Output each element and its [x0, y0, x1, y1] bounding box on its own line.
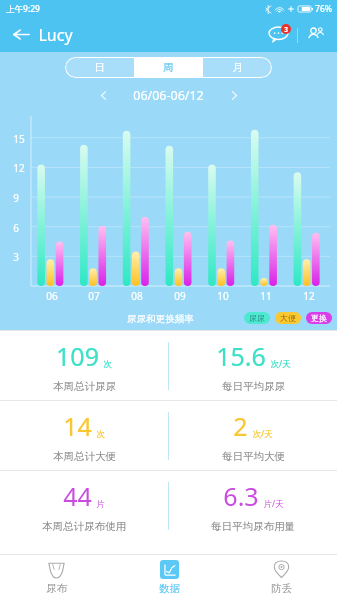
- staticText: 07: [88, 289, 100, 303]
- button[interactable]: 2: [169, 401, 337, 470]
- button[interactable]: 14: [0, 401, 168, 470]
- staticText: 12: [13, 161, 25, 175]
- button[interactable]: Family members: [305, 24, 327, 46]
- button[interactable]: 防丢: [225, 555, 337, 600]
- button[interactable]: Next week: [222, 83, 246, 107]
- button[interactable]: Previous week: [91, 83, 115, 107]
- staticText: 3: [13, 250, 19, 264]
- staticText: 次: [96, 429, 105, 440]
- staticText: 每日平均大便: [222, 450, 285, 463]
- staticText: 06: [46, 289, 58, 303]
- button[interactable]: Back: [9, 22, 34, 47]
- staticText: 6.3: [223, 479, 259, 513]
- staticText: 本周总计大便: [53, 450, 116, 463]
- staticText: 本周总计尿布使用: [42, 520, 126, 533]
- staticText: 次/天: [252, 428, 273, 440]
- staticText: 数据: [159, 582, 180, 595]
- staticText: 每日平均尿布用量: [211, 520, 295, 533]
- button[interactable]: 日: [65, 57, 134, 78]
- staticText: 每日平均尿尿: [222, 380, 285, 393]
- staticText: 片/天: [263, 498, 284, 510]
- button[interactable]: 周: [134, 57, 203, 78]
- button[interactable]: 109: [0, 331, 168, 400]
- staticText: 44: [63, 479, 92, 513]
- staticText: 防丢: [271, 582, 292, 595]
- staticText: 尿布: [46, 582, 67, 595]
- staticText: 片: [96, 499, 105, 510]
- staticText: 14: [63, 409, 92, 443]
- staticText: 6: [13, 221, 19, 235]
- staticText: 15.6: [216, 339, 266, 373]
- staticText: 12: [303, 289, 315, 303]
- button[interactable]: 44: [0, 471, 168, 540]
- button[interactable]: 大便: [275, 312, 301, 324]
- staticText: 3: [284, 25, 288, 34]
- staticText: 76%: [315, 3, 332, 15]
- button[interactable]: 月: [203, 57, 272, 78]
- button[interactable]: 数据: [113, 555, 225, 600]
- button[interactable]: 尿布: [0, 555, 113, 600]
- staticText: 尿尿和更换频率: [127, 313, 194, 325]
- staticText: 大便: [280, 313, 296, 323]
- staticText: 周: [163, 61, 174, 74]
- staticText: 9: [13, 191, 19, 205]
- staticText: 日: [94, 61, 105, 74]
- button[interactable]: 6.3: [169, 471, 337, 540]
- staticText: 尿尿: [249, 313, 265, 323]
- staticText: 109: [56, 339, 99, 373]
- staticText: Lucy: [38, 24, 73, 46]
- staticText: 上午9:29: [6, 3, 40, 15]
- button[interactable]: Messages: [267, 25, 290, 45]
- staticText: 月: [232, 61, 243, 74]
- staticText: 次: [103, 359, 112, 370]
- button[interactable]: 尿尿: [244, 312, 270, 324]
- staticText: 08: [131, 289, 143, 303]
- button[interactable]: 15.6: [169, 331, 337, 400]
- staticText: 15: [13, 132, 25, 146]
- staticText: 次/天: [270, 358, 291, 370]
- staticText: 更换: [311, 313, 327, 323]
- staticText: 本周总计尿尿: [53, 380, 116, 393]
- staticText: 10: [217, 289, 229, 303]
- staticText: 11: [260, 289, 272, 303]
- staticText: 2: [233, 409, 248, 443]
- staticText: 09: [174, 289, 186, 303]
- staticText: 06/06-06/12: [133, 87, 204, 104]
- button[interactable]: 更换: [306, 312, 332, 324]
